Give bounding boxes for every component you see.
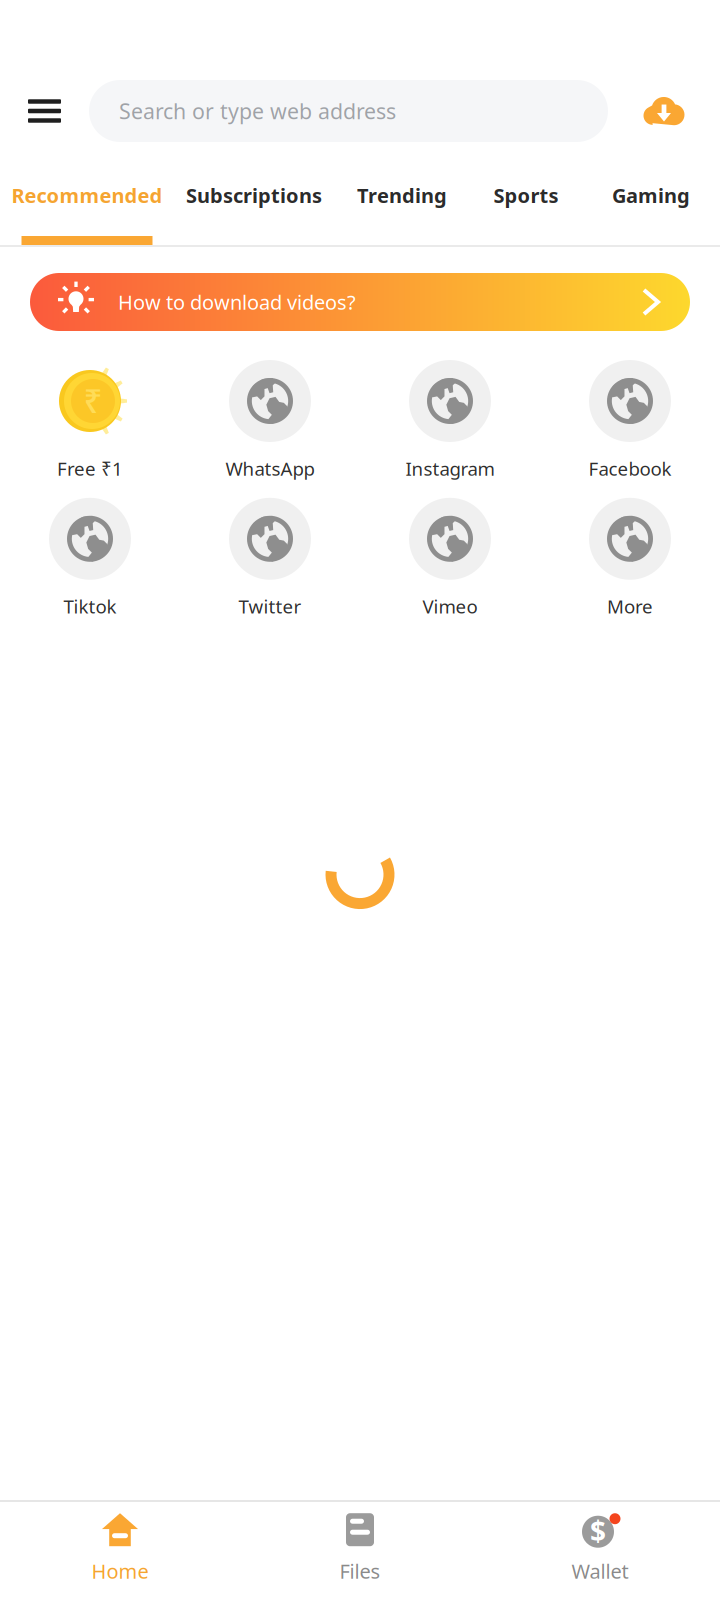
button[interactable]: Recommended (0, 152, 174, 247)
staticText: Recommended (11, 182, 162, 209)
button[interactable]: Tiktok (0, 498, 180, 619)
button[interactable]: Menu (0, 70, 89, 152)
button[interactable]: Facebook (540, 360, 720, 481)
staticText: Gaming (612, 182, 690, 209)
button[interactable]: Twitter (180, 498, 360, 619)
button[interactable]: ₹ (0, 360, 180, 481)
staticText: Trending (357, 182, 447, 209)
staticText: More (607, 594, 653, 619)
staticText: Sports (493, 182, 558, 209)
button[interactable]: Instagram (360, 360, 540, 481)
staticText: Instagram (405, 456, 494, 481)
button[interactable]: Search or type web address (89, 80, 608, 142)
staticText: Free ₹1 (57, 456, 123, 481)
button[interactable]: More (540, 498, 720, 619)
button[interactable]: $ (480, 1494, 720, 1600)
button[interactable]: Trending (334, 152, 470, 247)
button[interactable]: WhatsApp (180, 360, 360, 481)
staticText: $ (590, 1512, 606, 1549)
button[interactable]: Subscriptions (174, 152, 334, 247)
staticText: Home (91, 1558, 148, 1584)
staticText: Wallet (571, 1558, 628, 1584)
staticText: How to download videos? (118, 289, 356, 315)
staticText: Twitter (238, 594, 301, 619)
staticText: WhatsApp (225, 456, 314, 481)
staticText: Files (339, 1558, 380, 1584)
staticText: Subscriptions (186, 182, 322, 209)
button[interactable]: Gaming (582, 152, 720, 247)
staticText: Facebook (588, 456, 671, 481)
staticText: Tiktok (63, 594, 116, 619)
staticText: Vimeo (422, 594, 477, 619)
button[interactable]: Files (240, 1494, 480, 1600)
button[interactable]: Home (0, 1494, 240, 1600)
button[interactable]: How to download videos? (0, 247, 720, 331)
button[interactable]: Vimeo (360, 498, 540, 619)
button[interactable]: Downloads (608, 70, 720, 152)
staticText: Search or type web address (119, 97, 396, 125)
button[interactable]: Sports (470, 152, 582, 247)
staticText: ₹ (83, 378, 102, 422)
